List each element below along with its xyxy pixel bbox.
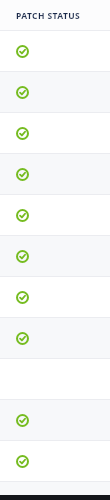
button[interactable]: PATCH STATUS [0,0,110,31]
other: Patched [16,209,29,222]
button[interactable]: Patched [0,72,110,113]
other: Patched [16,250,29,263]
button[interactable]: Patched [0,277,110,318]
other: Patched [16,127,29,140]
other: Patched [16,414,29,427]
button[interactable]: Patched [0,31,110,72]
button[interactable] [0,359,110,400]
button[interactable]: Patched [0,113,110,154]
button[interactable]: Patched [0,441,110,482]
other: Patched [16,86,29,99]
button[interactable]: Patched [0,236,110,277]
button[interactable]: Patched [0,400,110,441]
button[interactable]: Patched [0,154,110,195]
staticText: PATCH STATUS [16,10,81,22]
button[interactable]: Patched [0,195,110,236]
other: Patched [16,332,29,345]
other: Patched [16,168,29,181]
other: Patched [16,45,29,58]
other: Patched [16,455,29,468]
button[interactable]: Patched [0,318,110,359]
other: Patched [16,291,29,304]
